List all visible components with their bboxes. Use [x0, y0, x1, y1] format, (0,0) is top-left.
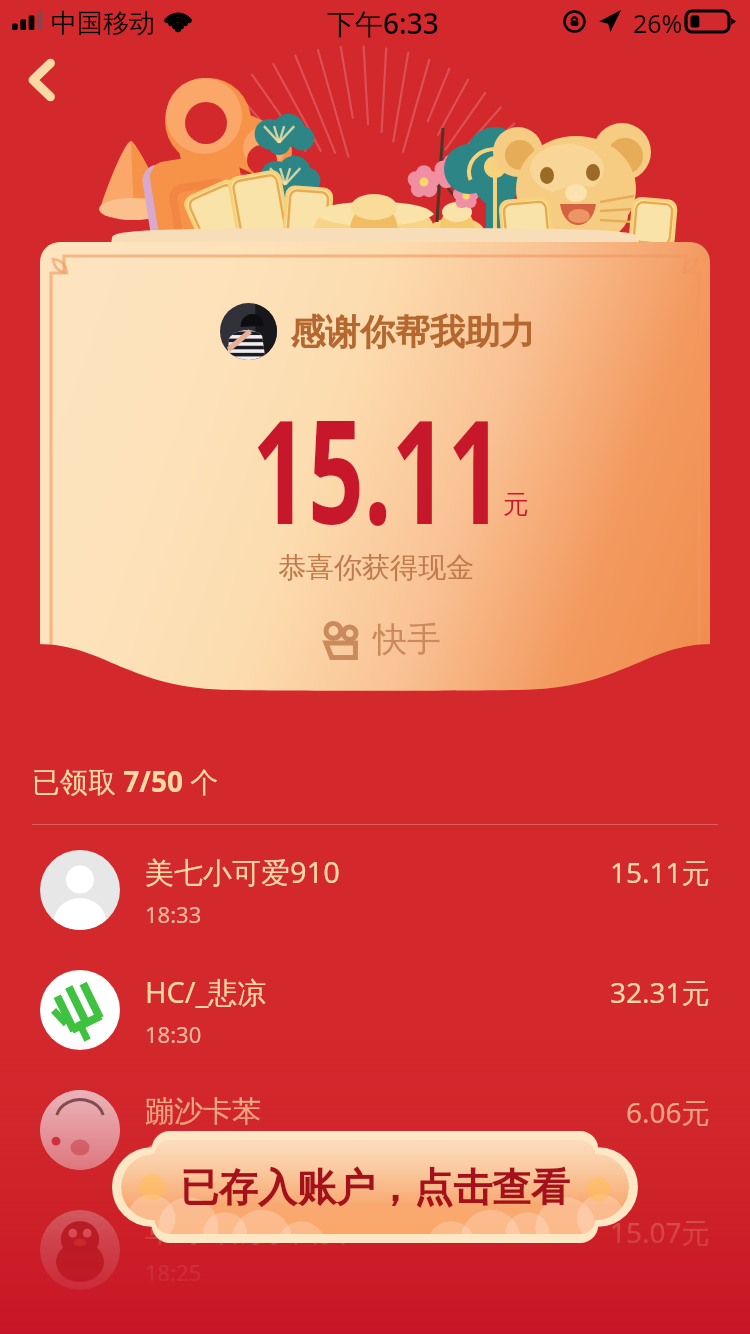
staticText: 恭喜你获得现金 [278, 550, 474, 585]
button[interactable]: 已存入账户，点击查看 [112, 1131, 638, 1243]
staticText: 下午6:33 [327, 4, 439, 42]
staticText: 18:30 [145, 1019, 202, 1049]
staticText: 已领取 [32, 765, 116, 800]
staticText: 15.11 [252, 371, 504, 566]
button[interactable]: 草莓味的小仙女 [0, 1200, 750, 1300]
button[interactable]: Back [14, 52, 70, 108]
staticText: 7/50 [116, 762, 183, 800]
button[interactable]: 美七小可爱910 [0, 840, 750, 940]
staticText: 中国移动 [51, 7, 155, 40]
staticText: 15.11元 [610, 853, 710, 891]
button[interactable]: HC/_悲凉 [0, 960, 750, 1060]
staticText: 感谢你帮我助力 [290, 310, 535, 354]
staticText: 18:25 [145, 1257, 202, 1287]
staticText: 快手 [373, 618, 441, 661]
button[interactable]: 蹦沙卡苯 [0, 1080, 750, 1180]
staticText: 蹦沙卡苯 [145, 1093, 261, 1130]
staticText: 元 [503, 488, 529, 521]
staticText: 6.06元 [626, 1093, 710, 1131]
staticText: 18:27 [145, 1137, 202, 1167]
staticText: 已存入账户，点击查看 [180, 1163, 570, 1212]
staticText: 个 [183, 762, 219, 800]
staticText: 15.07元 [610, 1213, 710, 1251]
staticText: 32.31元 [610, 973, 710, 1011]
staticText: 26% [633, 6, 683, 40]
staticText: HC/_悲凉 [145, 972, 267, 1012]
staticText: 18:33 [145, 899, 202, 929]
staticText: 美七小可爱910 [145, 852, 340, 892]
staticText: 草莓味的小仙女 [145, 1213, 348, 1250]
